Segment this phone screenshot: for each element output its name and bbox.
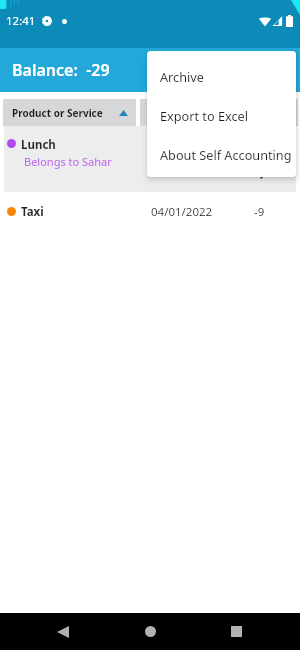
staticText: 12:41: [6, 13, 36, 29]
button[interactable]: Product or Service: [3, 99, 136, 126]
button[interactable]: Back: [43, 613, 83, 650]
button[interactable]: Home: [130, 613, 170, 650]
button[interactable]: Recent apps: [216, 613, 256, 650]
button[interactable]: Archive: [147, 57, 296, 96]
staticText: Lunch: [21, 137, 56, 153]
button[interactable]: Taxi: [0, 192, 300, 228]
staticText: 04/01/2022: [151, 204, 213, 220]
staticText: Belongs to Sahar: [24, 154, 112, 169]
staticText: About Self Accounting: [160, 146, 292, 163]
button[interactable]: About Self Accounting: [147, 135, 296, 174]
staticText: Taxi: [21, 204, 44, 220]
button[interactable]: Date: [140, 99, 215, 126]
staticText: Product or Service: [12, 106, 103, 120]
staticText: Price: [246, 106, 271, 120]
button[interactable]: Price: [219, 99, 298, 126]
other: Collapse row: [256, 172, 267, 179]
staticText: -9: [254, 204, 265, 220]
staticText: Archive: [160, 68, 204, 85]
staticText: Export to Excel: [160, 107, 248, 124]
staticText: Date: [166, 106, 190, 120]
staticText: Balance: -29: [12, 59, 110, 81]
button[interactable]: Lunch: [4, 126, 296, 192]
button[interactable]: Export to Excel: [147, 96, 296, 135]
